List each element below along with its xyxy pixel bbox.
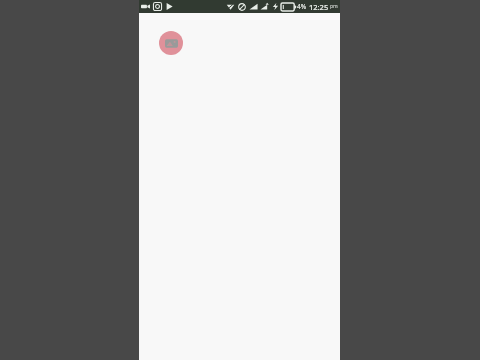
staticText: pm (330, 3, 338, 10)
staticText: 12:25 (309, 2, 329, 12)
button[interactable]: Profile photo (159, 31, 183, 55)
staticText: 4% (297, 2, 307, 11)
